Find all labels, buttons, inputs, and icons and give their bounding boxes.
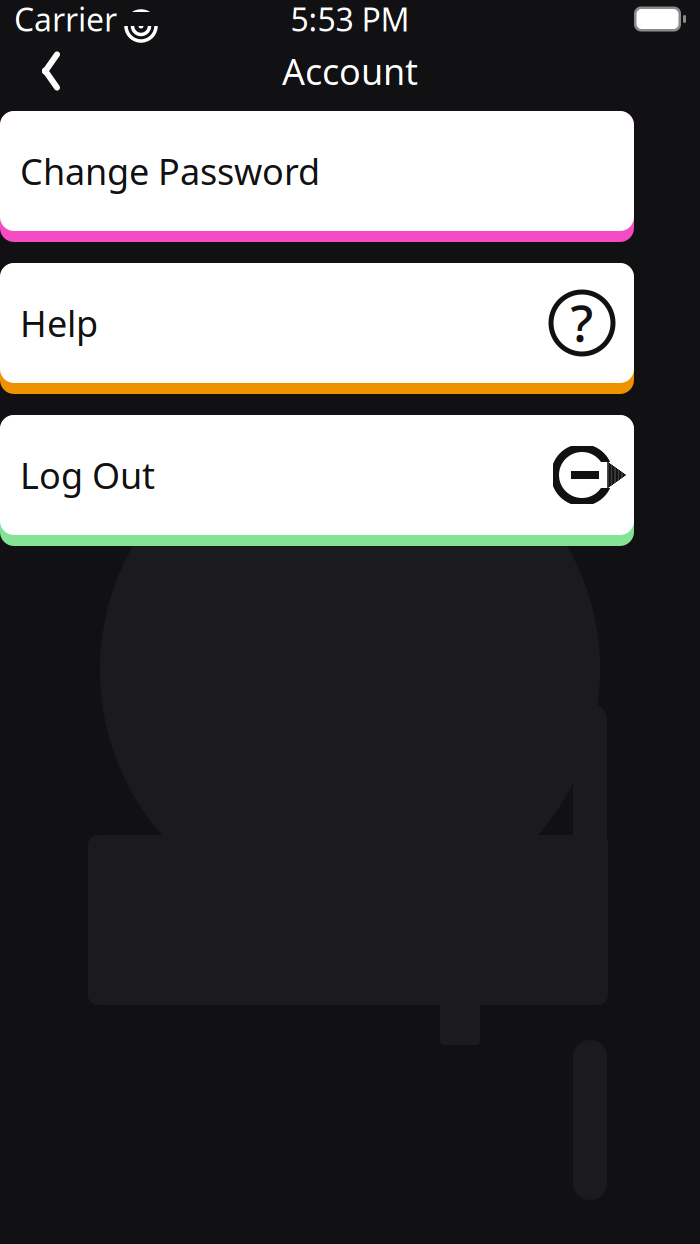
- staticText: Help: [20, 299, 98, 347]
- staticText: Carrier: [14, 0, 117, 40]
- staticText: ?: [570, 288, 593, 356]
- staticText: Change Password: [20, 147, 320, 195]
- staticText: Account: [282, 47, 418, 95]
- button[interactable]: Help: [0, 263, 634, 394]
- button[interactable]: Back: [20, 40, 82, 102]
- button[interactable]: Change Password: [0, 111, 634, 242]
- button[interactable]: Log Out: [0, 415, 634, 546]
- staticText: Log Out: [20, 451, 155, 499]
- staticText: 5:53 PM: [290, 0, 409, 40]
